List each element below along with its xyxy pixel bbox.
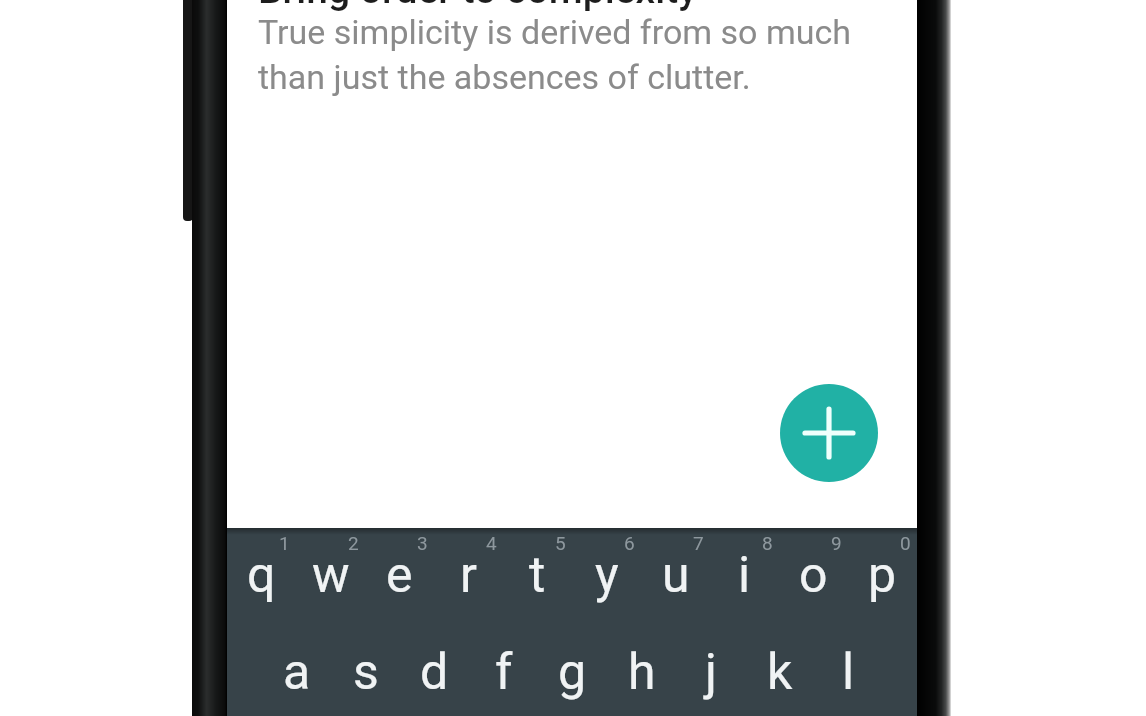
button[interactable]: l — [814, 630, 883, 716]
button[interactable]: 0 — [848, 528, 917, 630]
staticText: a — [283, 643, 311, 702]
staticText: w — [312, 546, 350, 605]
staticText: 4 — [486, 532, 497, 554]
staticText: y — [595, 546, 619, 605]
staticText: h — [628, 643, 656, 702]
staticText: 6 — [624, 532, 635, 554]
staticText: u — [662, 546, 690, 605]
staticText: 7 — [693, 532, 704, 554]
button[interactable]: f — [469, 630, 538, 716]
button[interactable]: 4 — [434, 528, 503, 630]
button[interactable]: 2 — [296, 528, 365, 630]
staticText: q — [247, 546, 276, 605]
button[interactable]: 1 — [227, 528, 296, 630]
button[interactable]: 5 — [503, 528, 572, 630]
staticText: o — [799, 546, 828, 605]
staticText: t — [529, 546, 546, 605]
staticText: Bring order to complexity — [258, 0, 698, 13]
button[interactable]: 6 — [572, 528, 641, 630]
button[interactable]: j — [676, 630, 745, 716]
staticText: l — [842, 643, 855, 702]
button[interactable]: 7 — [641, 528, 710, 630]
button[interactable]: k — [745, 630, 814, 716]
staticText: 3 — [417, 532, 428, 554]
button[interactable]: s — [331, 630, 400, 716]
staticText: s — [353, 643, 379, 702]
staticText: 8 — [762, 532, 773, 554]
staticText: j — [705, 643, 717, 702]
staticText: r — [460, 546, 477, 605]
staticText: 2 — [348, 532, 359, 554]
button[interactable]: g — [538, 630, 607, 716]
staticText: 9 — [831, 532, 842, 554]
staticText: f — [495, 643, 513, 702]
staticText: e — [386, 546, 413, 605]
staticText: 1 — [279, 532, 290, 554]
staticText: p — [868, 546, 897, 605]
button[interactable]: 9 — [779, 528, 848, 630]
button[interactable]: a — [262, 630, 331, 716]
staticText: 0 — [900, 532, 911, 554]
button[interactable]: 3 — [365, 528, 434, 630]
staticText: g — [558, 643, 587, 702]
staticText: k — [767, 643, 793, 702]
button[interactable]: h — [607, 630, 676, 716]
button[interactable] — [780, 384, 878, 482]
staticText: 5 — [555, 532, 566, 554]
staticText: d — [420, 643, 449, 702]
staticText: True simplicity is derived from so much … — [258, 12, 851, 97]
button[interactable]: d — [400, 630, 469, 716]
staticText: i — [738, 546, 751, 605]
button[interactable]: 8 — [710, 528, 779, 630]
